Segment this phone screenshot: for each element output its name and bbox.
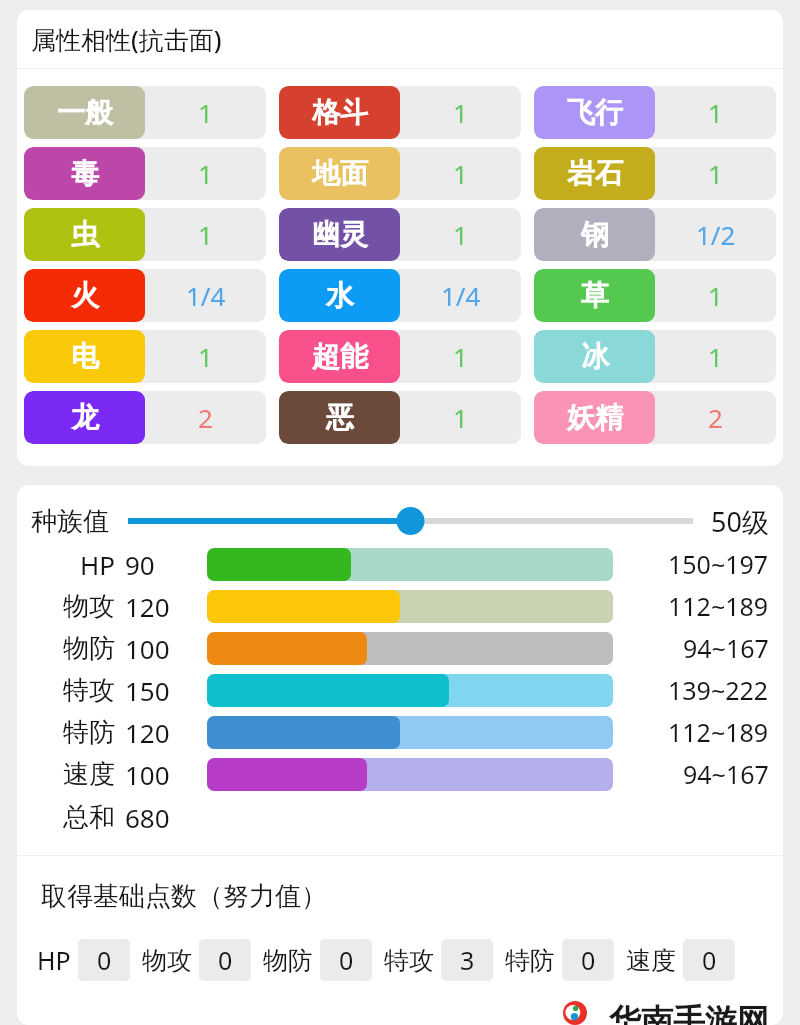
staticText: 0 (218, 943, 233, 977)
staticText: 特防 (63, 716, 115, 749)
staticText: 物防 (263, 945, 313, 976)
button[interactable]: 0 (562, 939, 614, 981)
staticText: 1 (708, 156, 723, 191)
staticText: 草 (581, 278, 609, 313)
staticText: 0 (97, 943, 112, 977)
button[interactable]: 0 (683, 939, 735, 981)
button[interactable]: 火 (24, 269, 266, 322)
button[interactable]: 超能 (279, 330, 521, 383)
staticText: 速度 (626, 945, 676, 976)
button[interactable]: 妖精 (534, 391, 776, 444)
staticText: 0 (339, 943, 354, 977)
staticText: 种族值 (31, 505, 109, 538)
staticText: 120 (125, 589, 170, 624)
staticText: 2 (198, 400, 213, 435)
button[interactable]: 等级滑块 (128, 504, 693, 538)
staticText: 火 (71, 278, 99, 313)
button[interactable]: 地面 (279, 147, 521, 200)
button[interactable]: 一般 (24, 86, 266, 139)
staticText: 物攻 (63, 590, 115, 623)
staticText: 1 (198, 95, 213, 130)
staticText: 虫 (71, 217, 99, 252)
staticText: 0 (702, 943, 717, 977)
staticText: 超能 (312, 339, 368, 374)
button[interactable]: 钢 (534, 208, 776, 261)
staticText: 妖精 (567, 400, 623, 435)
staticText: 1 (198, 339, 213, 374)
button[interactable]: 岩石 (534, 147, 776, 200)
staticText: 飞行 (567, 95, 623, 130)
button[interactable]: 龙 (24, 391, 266, 444)
staticText: 特防 (505, 945, 555, 976)
staticText: 1/2 (696, 217, 736, 252)
button[interactable]: 0 (78, 939, 130, 981)
staticText: 取得基础点数（努力值） (41, 880, 327, 913)
button[interactable]: 冰 (534, 330, 776, 383)
staticText: 特攻 (63, 674, 115, 707)
staticText: 物攻 (142, 945, 192, 976)
staticText: 1 (453, 217, 468, 252)
staticText: 地面 (312, 156, 368, 191)
staticText: 物防 (63, 632, 115, 665)
staticText: 139~222 (668, 673, 769, 707)
staticText: 特攻 (384, 945, 434, 976)
staticText: 50级 (711, 503, 769, 540)
button[interactable]: 草 (534, 269, 776, 322)
staticText: 总和 (63, 801, 115, 834)
staticText: 0 (581, 943, 596, 977)
staticText: 150~197 (668, 547, 769, 581)
staticText: 钢 (581, 217, 609, 252)
staticText: 2 (708, 400, 723, 435)
button[interactable]: 幽灵 (279, 208, 521, 261)
staticText: HP (37, 943, 71, 977)
staticText: 速度 (63, 758, 115, 791)
staticText: 一般 (57, 95, 113, 130)
staticText: 龙 (71, 400, 99, 435)
button[interactable]: 恶 (279, 391, 521, 444)
staticText: 94~167 (683, 757, 769, 791)
staticText: 幽灵 (312, 217, 368, 252)
staticText: 1 (453, 400, 468, 435)
staticText: 1 (708, 339, 723, 374)
staticText: 1 (453, 156, 468, 191)
staticText: 1/4 (186, 278, 226, 313)
staticText: 毒 (71, 156, 99, 191)
staticText: 100 (125, 631, 170, 666)
staticText: 华南手游网 (609, 1001, 769, 1025)
staticText: 1 (708, 278, 723, 313)
staticText: 1 (708, 95, 723, 130)
staticText: 恶 (326, 400, 354, 435)
staticText: 属性相性(抗击面) (31, 22, 222, 56)
staticText: 100 (125, 757, 170, 792)
staticText: 94~167 (683, 631, 769, 665)
button[interactable]: 0 (199, 939, 251, 981)
staticText: 1 (198, 217, 213, 252)
button[interactable]: 虫 (24, 208, 266, 261)
button[interactable]: 0 (320, 939, 372, 981)
staticText: 格斗 (312, 95, 368, 130)
button[interactable]: 水 (279, 269, 521, 322)
staticText: 90 (125, 547, 155, 582)
staticText: 1 (453, 339, 468, 374)
staticText: 冰 (581, 339, 609, 374)
staticText: 1 (198, 156, 213, 191)
staticText: 岩石 (567, 156, 623, 191)
staticText: 680 (125, 800, 170, 835)
button[interactable]: 毒 (24, 147, 266, 200)
staticText: 112~189 (668, 715, 769, 749)
staticText: 150 (125, 673, 170, 708)
button[interactable]: 格斗 (279, 86, 521, 139)
staticText: 112~189 (668, 589, 769, 623)
button[interactable]: 飞行 (534, 86, 776, 139)
button[interactable]: 3 (441, 939, 493, 981)
staticText: 1 (453, 95, 468, 130)
button[interactable]: 电 (24, 330, 266, 383)
staticText: 3 (460, 943, 475, 977)
staticText: 120 (125, 715, 170, 750)
staticText: 1/4 (441, 278, 481, 313)
staticText: 水 (326, 278, 354, 313)
staticText: 电 (71, 339, 99, 374)
staticText: HP (80, 547, 115, 582)
